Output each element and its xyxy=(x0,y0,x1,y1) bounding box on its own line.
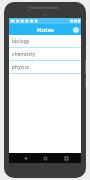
staticText: Notes xyxy=(37,26,54,34)
staticText: physics xyxy=(12,64,30,71)
button[interactable]: Back xyxy=(20,153,30,163)
button[interactable]: chemistry xyxy=(9,48,81,61)
button[interactable]: Home xyxy=(40,153,50,163)
button[interactable]: biology xyxy=(9,35,81,48)
staticText: biology xyxy=(12,38,30,45)
staticText: chemistry xyxy=(12,51,36,58)
button[interactable]: Recent apps xyxy=(61,153,71,163)
button[interactable]: Settings xyxy=(70,24,81,35)
button[interactable]: physics xyxy=(9,61,81,74)
